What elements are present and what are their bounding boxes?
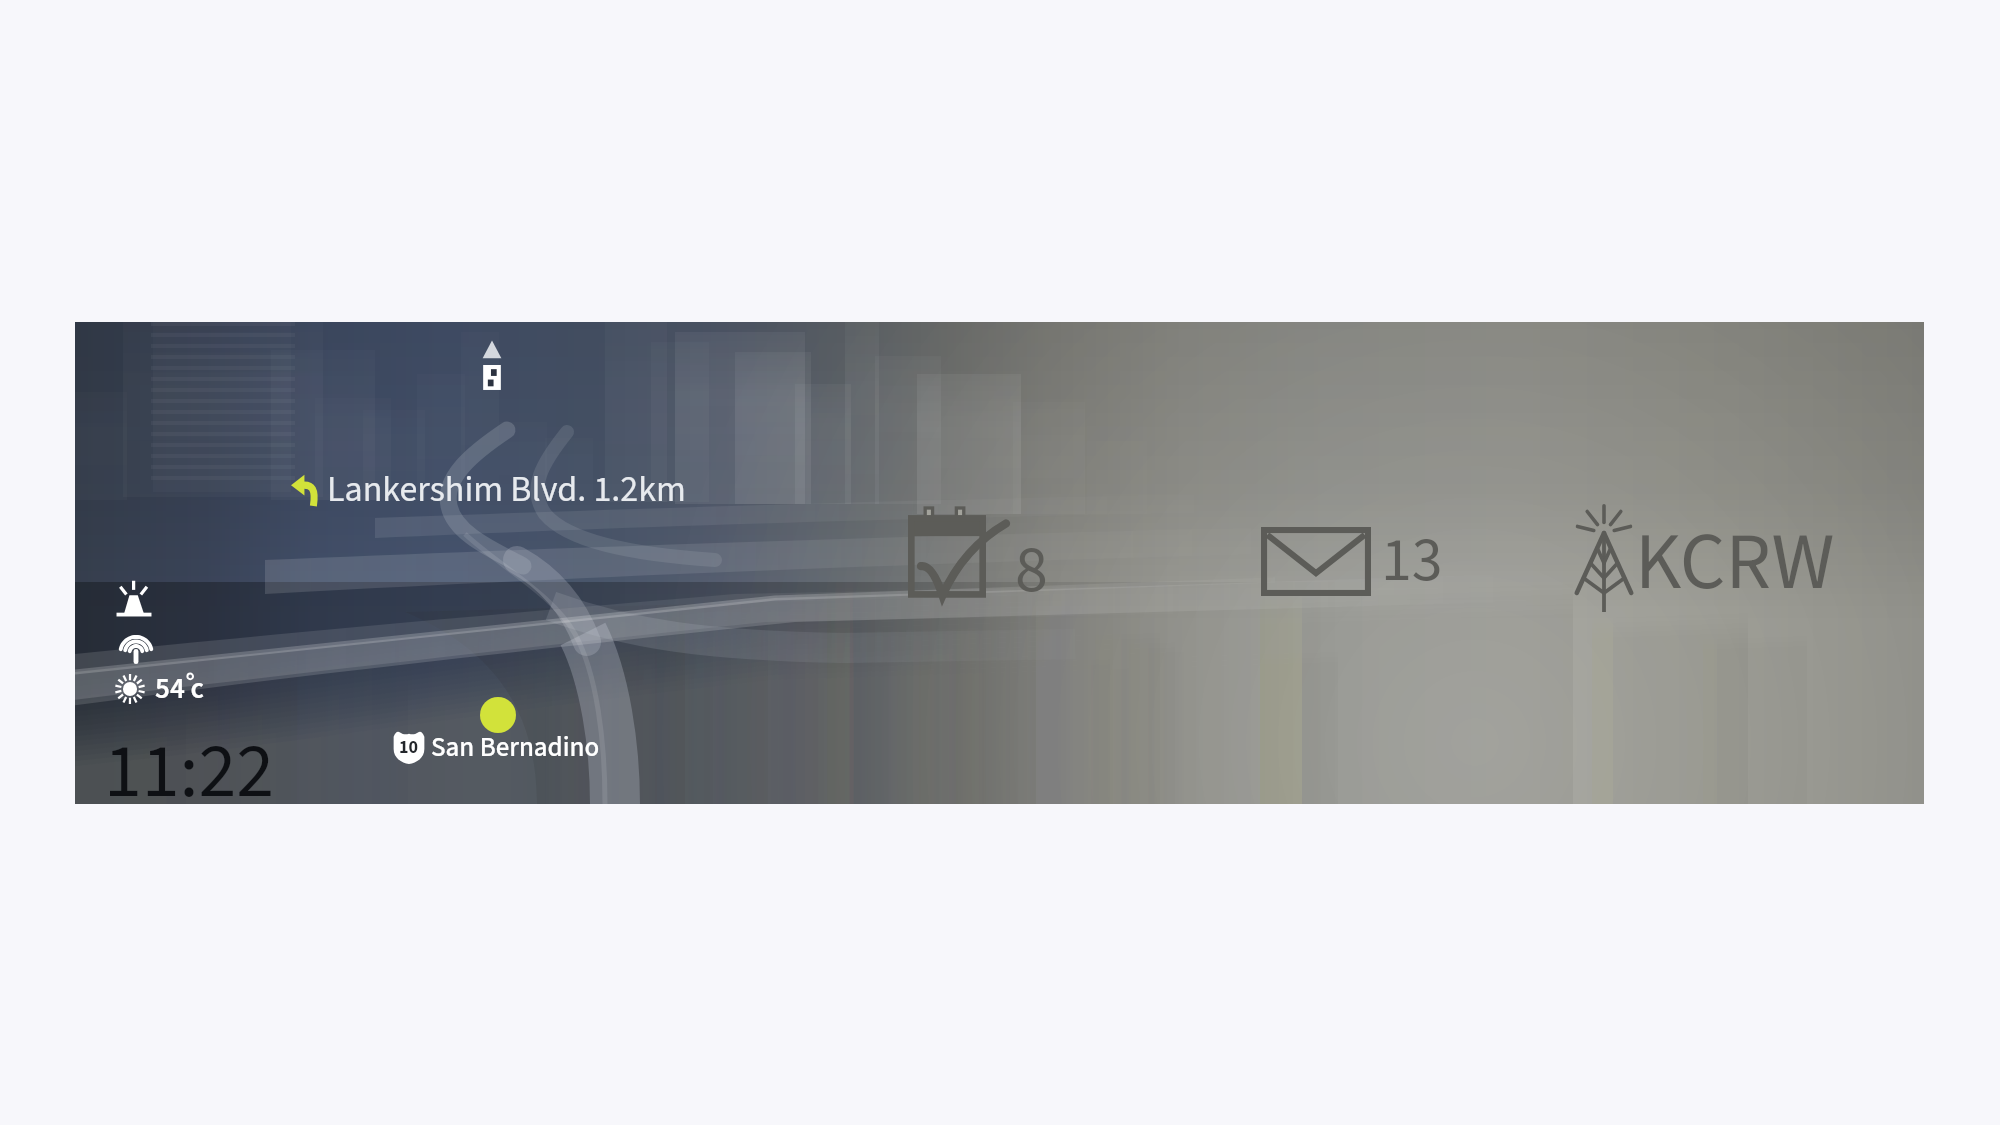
staticText: San Bernadino [431,728,600,766]
button[interactable]: Lankershim Blvd. 1.2km [291,464,686,515]
other: Wi-Fi [119,628,153,662]
staticText: 8 [1015,523,1048,617]
button[interactable]: 54 c [115,668,204,709]
staticText: KCRW [1635,506,1835,620]
button[interactable]: 13 [1261,517,1443,605]
staticText: 54 c [155,668,204,709]
button[interactable]: 8 [908,508,1048,605]
button[interactable]: 10 [393,728,600,766]
other: Destination marker [479,339,505,391]
staticText: 13 [1381,517,1443,605]
staticText: 10 [399,735,419,761]
staticText: 11:22 [104,718,275,826]
other: Hazard alert [115,580,153,618]
staticText: Lankershim Blvd. 1.2km [327,464,686,515]
button[interactable]: KCRW [1573,506,1835,620]
button[interactable]: Current location [480,697,516,733]
